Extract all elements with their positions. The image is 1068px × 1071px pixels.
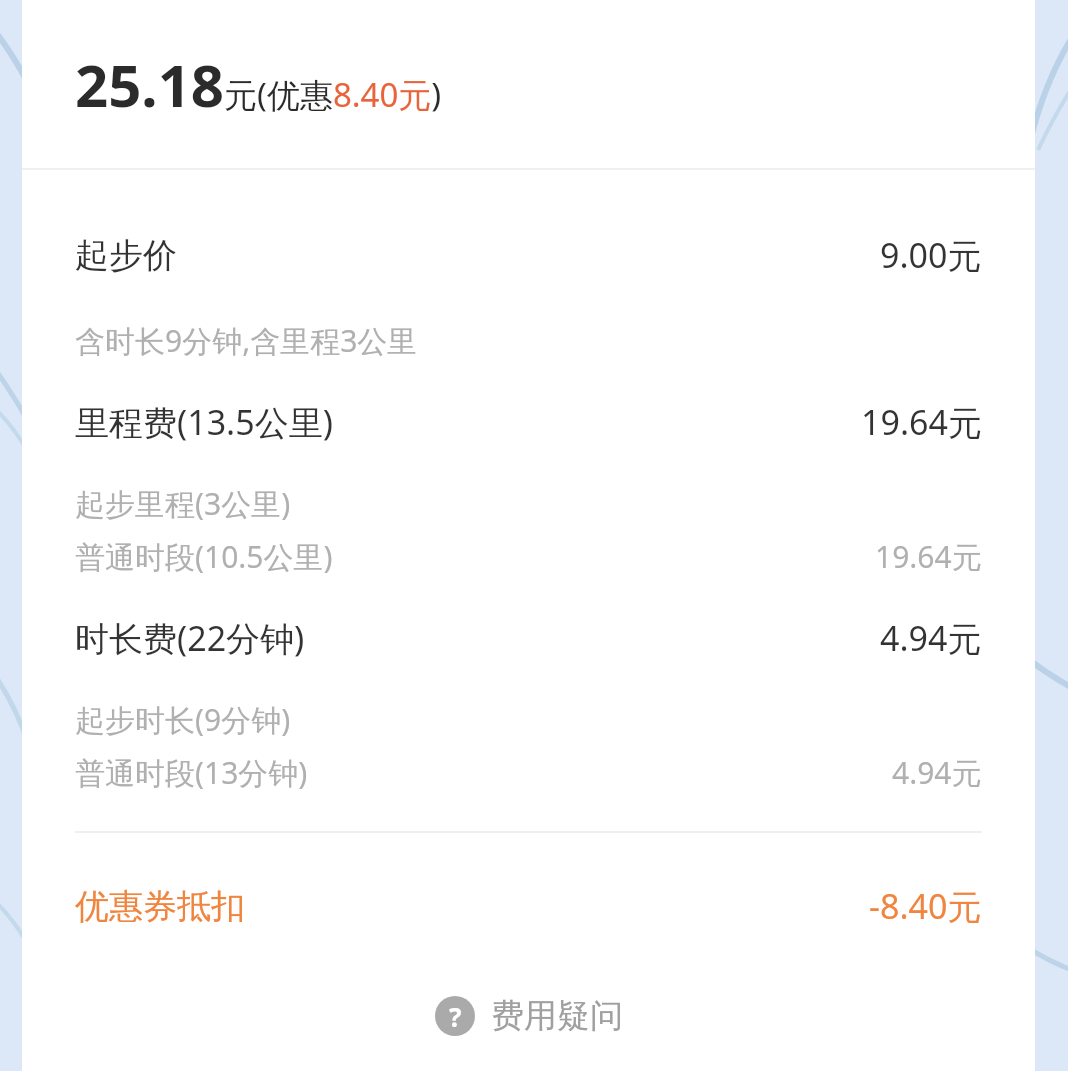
staticText: 普通时段(13分钟) bbox=[75, 752, 308, 793]
other: 帮助 bbox=[435, 996, 475, 1036]
staticText: 起步里程(3公里) bbox=[75, 483, 291, 524]
staticText: 含时长9分钟,含里程3公里 bbox=[75, 320, 418, 361]
staticText: 4.94元 bbox=[892, 752, 982, 793]
staticText: -8.40元 bbox=[869, 883, 982, 929]
staticText: 19.64元 bbox=[875, 536, 982, 577]
staticText: 费用疑问 bbox=[491, 995, 623, 1037]
staticText: 9.00元 bbox=[880, 232, 982, 278]
button[interactable]: 优惠券抵扣 bbox=[75, 883, 982, 929]
staticText: 4.94元 bbox=[880, 615, 982, 661]
button[interactable]: 时长费(22分钟) bbox=[75, 615, 982, 661]
button[interactable]: 帮助 bbox=[22, 995, 1035, 1037]
button[interactable]: 里程费(13.5公里) bbox=[75, 399, 982, 445]
staticText: ? bbox=[449, 999, 462, 1034]
staticText: 里程费(13.5公里) bbox=[75, 399, 333, 445]
staticText: 19.64元 bbox=[861, 399, 982, 445]
staticText: 优惠券抵扣 bbox=[75, 885, 245, 928]
button[interactable]: 起步价 bbox=[75, 232, 982, 278]
staticText: 时长费(22分钟) bbox=[75, 615, 305, 661]
staticText: 普通时段(10.5公里) bbox=[75, 536, 333, 577]
staticText: 25.18元(优惠8.40元) bbox=[75, 45, 442, 124]
staticText: 起步时长(9分钟) bbox=[75, 699, 291, 740]
staticText: 起步价 bbox=[75, 234, 177, 277]
